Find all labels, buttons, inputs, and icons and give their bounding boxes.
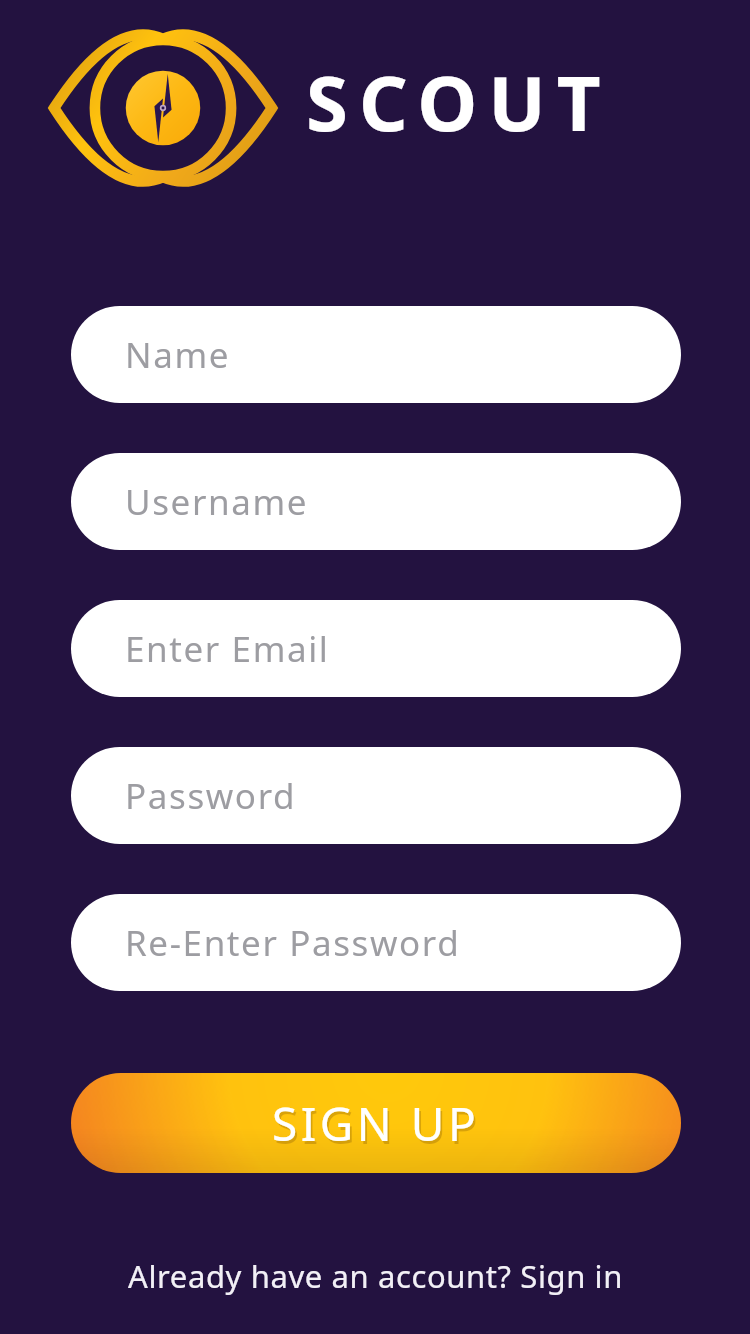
button[interactable]: SIGN UP: [71, 1073, 681, 1173]
staticText: Username: [125, 478, 309, 526]
staticText: Name: [125, 331, 231, 379]
staticText: Re-Enter Password: [125, 919, 461, 967]
staticText: Password: [125, 772, 297, 820]
other: Scout logo: [50, 32, 276, 184]
staticText: Enter Email: [125, 625, 330, 673]
staticText: SIGN UP: [272, 1092, 480, 1155]
button[interactable]: Username: [71, 453, 681, 550]
button[interactable]: Enter Email: [71, 600, 681, 697]
staticText: SCOUT: [306, 50, 612, 154]
button[interactable]: Password: [71, 747, 681, 844]
button[interactable]: Already have an account? Sign in: [0, 1248, 750, 1304]
staticText: Already have an account? Sign in: [128, 1255, 623, 1297]
button[interactable]: Re-Enter Password: [71, 894, 681, 991]
button[interactable]: Name: [71, 306, 681, 403]
staticText: SIGN UP: [274, 1095, 482, 1158]
